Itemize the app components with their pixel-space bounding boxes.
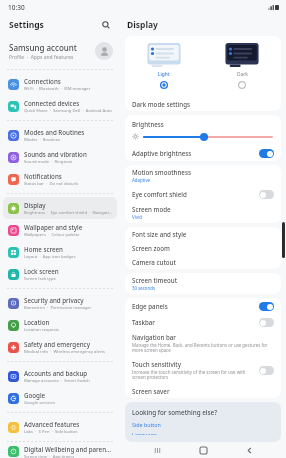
button[interactable]: Side button [132,421,161,428]
staticText: Display [24,201,46,209]
button[interactable]: Back [240,442,258,458]
button[interactable]: Touch sensitivity [125,357,281,384]
staticText: Accounts and backup [24,369,88,377]
staticText: Edge panels [132,302,259,310]
button[interactable]: Search [99,18,113,32]
staticText: Sounds and vibration [24,150,87,158]
button[interactable]: Lock screen [3,263,117,285]
button[interactable]: Font size and style [125,227,281,241]
staticText: Brightness [132,120,164,128]
staticText: Increase the touch sensitivity of the sc… [132,369,255,381]
staticText: Language [132,431,157,435]
staticText: Location requests [24,327,59,333]
button[interactable]: Location [3,314,117,336]
button[interactable]: Taskbar [125,314,281,330]
button[interactable] [259,366,274,375]
button[interactable]: Camera cutout [125,255,281,269]
staticText: Modes · Routines [24,137,61,143]
button[interactable]: Sounds and vibration [3,146,117,168]
staticText: Screen saver [132,387,170,395]
staticText: Profile · Apps and features [9,54,74,61]
staticText: Modes and Routines [24,128,85,136]
button[interactable]: Connected devices [3,95,117,117]
button[interactable]: Home [194,442,212,458]
staticText: Lock screen [24,267,59,275]
button[interactable] [259,302,274,311]
button[interactable]: Home screen [3,241,117,263]
button[interactable]: Display [3,197,117,219]
button[interactable]: Screen mode [125,202,281,223]
button[interactable]: Samsung account [0,36,120,66]
staticText: Sound mode · Ringtone [24,159,73,165]
button[interactable]: Motion smoothness [125,165,281,186]
button[interactable]: Dark [203,43,281,89]
staticText: Wi-Fi · Bluetooth · SIM manager [24,86,91,92]
staticText: Notifications [24,172,62,180]
staticText: 30 seconds [132,285,156,291]
staticText: Looking for something else? [132,408,218,417]
staticText: Wallpapers · Colour palette [24,232,80,238]
button[interactable]: Connections [3,73,117,95]
button[interactable]: Navigation bar [125,330,281,357]
button[interactable] [259,149,274,158]
button[interactable]: Safety and emergency [3,336,117,358]
button[interactable]: Digital Wellbeing and parental controls [3,445,117,458]
button[interactable] [259,190,274,199]
staticText: Google [24,391,46,399]
staticText: Navigation bar [132,333,176,341]
button[interactable]: Screen timeout [125,273,281,294]
staticText: Location [24,318,50,326]
staticText: Adaptive [132,177,151,183]
button[interactable]: Accounts and backup [3,365,117,387]
button[interactable]: Screen zoom [125,241,281,255]
staticText: Font size and style [132,230,187,238]
staticText: Digital Wellbeing and parental controls [24,445,113,453]
staticText: Camera cutout [132,258,176,266]
button[interactable]: Edge panels [125,298,281,314]
button[interactable]: Screen saver [125,384,281,398]
staticText: Layout · App icon badges [24,254,76,260]
button[interactable]: Language [132,431,157,435]
button[interactable]: Wallpaper and style [3,219,117,241]
staticText: Screen lock type [24,276,56,282]
button[interactable]: Dark mode settings [125,96,281,111]
staticText: Screen timeout [132,276,178,284]
staticText: Vivid [132,214,142,220]
staticText: Screen time · App timers [24,454,75,458]
staticText: 10:30 [8,3,25,12]
staticText: Manage the Home, Back, and Recents butto… [132,342,273,354]
staticText: Safety and emergency [24,340,90,348]
button[interactable] [259,318,274,327]
staticText: Taskbar [132,318,259,326]
button[interactable]: Advanced features [3,416,117,438]
staticText: Biometrics · Permission manager [24,305,92,311]
staticText: Motion smoothness [132,168,191,176]
staticText: Screen zoom [132,244,170,252]
staticText: Touch sensitivity [132,360,181,368]
staticText: Dark mode settings [132,100,191,108]
staticText: Manage accounts · Smart Switch [24,378,90,384]
button[interactable]: Eye comfort shield [125,186,281,202]
button[interactable]: Modes and Routines [3,124,117,146]
staticText: Medical info · Wireless emergency alerts [24,349,106,355]
staticText: Wallpaper and style [24,223,83,231]
button[interactable]: Recents [148,442,166,458]
staticText: Labs · S Pen · Side button [24,429,78,435]
staticText: Side button [132,421,161,428]
staticText: Light [158,71,170,78]
button[interactable]: Security and privacy [3,292,117,314]
button[interactable]: Notifications [3,168,117,190]
staticText: Samsung account [9,42,77,53]
staticText: Connections [24,77,61,85]
button[interactable]: Adaptive brightness [125,145,281,161]
staticText: Brightness · Eye comfort shield · Naviga… [24,210,113,216]
staticText: Google services [24,400,55,406]
staticText: Dark [237,71,248,78]
staticText: Home screen [24,245,63,253]
staticText: Display [127,19,158,31]
staticText: Advanced features [24,420,80,428]
staticText: Settings [9,19,99,31]
button[interactable]: Google [3,387,117,409]
staticText: Adaptive brightness [132,149,259,157]
button[interactable]: Light [125,43,203,89]
